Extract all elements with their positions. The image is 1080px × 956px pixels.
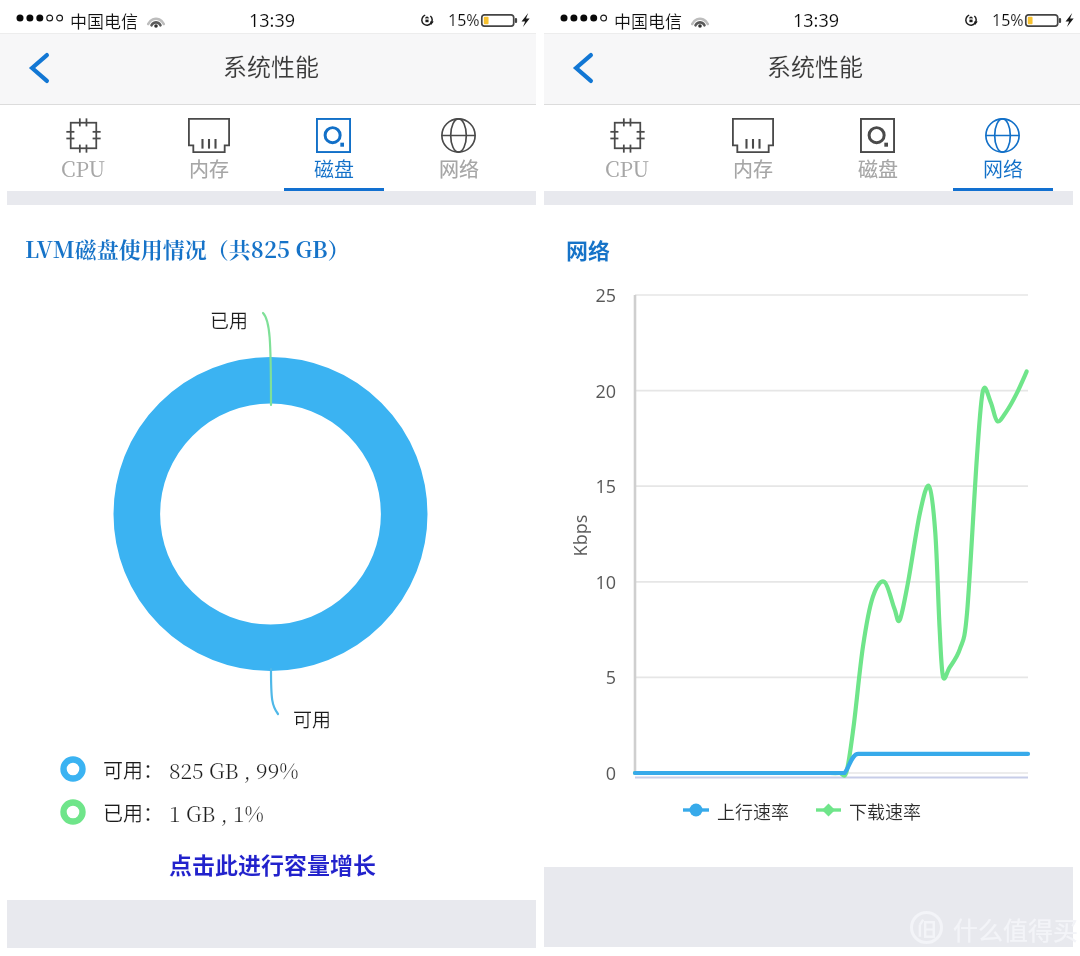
staticText: 磁盘	[314, 154, 354, 183]
staticText: 系统性能	[223, 48, 319, 83]
button[interactable]: 网络	[940, 105, 1065, 191]
button[interactable]: 内存	[690, 105, 815, 191]
staticText: 25	[566, 283, 616, 308]
button[interactable]: 已用：	[60, 798, 264, 826]
staticText: 点击此进行容量增长	[169, 847, 376, 880]
staticText: 中国电信	[614, 8, 682, 33]
staticText: 0	[566, 761, 616, 786]
button[interactable]: Back	[556, 45, 603, 93]
button[interactable]: 点击此进行容量增长	[160, 842, 385, 884]
button[interactable]: 可用：	[60, 755, 299, 783]
staticText: 磁盘	[858, 154, 898, 183]
staticText: 13:39	[793, 8, 840, 33]
staticText: 上行速率	[717, 798, 789, 822]
button[interactable]: 上行速率	[683, 798, 789, 822]
staticText: 15%	[448, 9, 480, 31]
staticText: 内存	[189, 154, 229, 183]
staticText: 13:39	[249, 8, 296, 33]
button[interactable]: 内存	[146, 105, 271, 191]
staticText: 15	[566, 474, 616, 499]
button[interactable]: 网络	[396, 105, 521, 191]
staticText: 中国电信	[70, 8, 138, 33]
staticText: CPU	[61, 153, 106, 183]
staticText: 系统性能	[767, 48, 863, 83]
staticText: 内存	[733, 154, 773, 183]
staticText: Kbps	[567, 514, 592, 556]
button[interactable]: 下载速率	[816, 798, 921, 822]
staticText: 可用	[293, 705, 332, 733]
staticText: 网络	[439, 154, 479, 183]
staticText: 下载速率	[849, 798, 921, 822]
button[interactable]: CPU	[21, 105, 146, 191]
staticText: LVM磁盘使用情况（共825 GB）	[25, 233, 350, 265]
staticText: CPU	[605, 153, 650, 183]
staticText: 20	[566, 379, 616, 404]
button[interactable]: 磁盘	[815, 105, 940, 191]
staticText: 什么值得买	[953, 911, 1079, 947]
staticText: 可用：	[103, 755, 163, 783]
staticText: 825 GB , 99%	[169, 755, 299, 783]
staticText: 已用	[210, 306, 249, 334]
staticText: 已用：	[103, 798, 163, 826]
button[interactable]: Back	[12, 45, 59, 93]
staticText: 5	[566, 665, 616, 690]
staticText: 网络	[566, 233, 611, 265]
button[interactable]: 磁盘	[271, 105, 396, 191]
staticText: 10	[566, 570, 616, 595]
button[interactable]: CPU	[565, 105, 690, 191]
staticText: 1 GB , 1%	[169, 798, 264, 826]
staticText: 网络	[983, 154, 1023, 183]
staticText: 15%	[992, 9, 1024, 31]
